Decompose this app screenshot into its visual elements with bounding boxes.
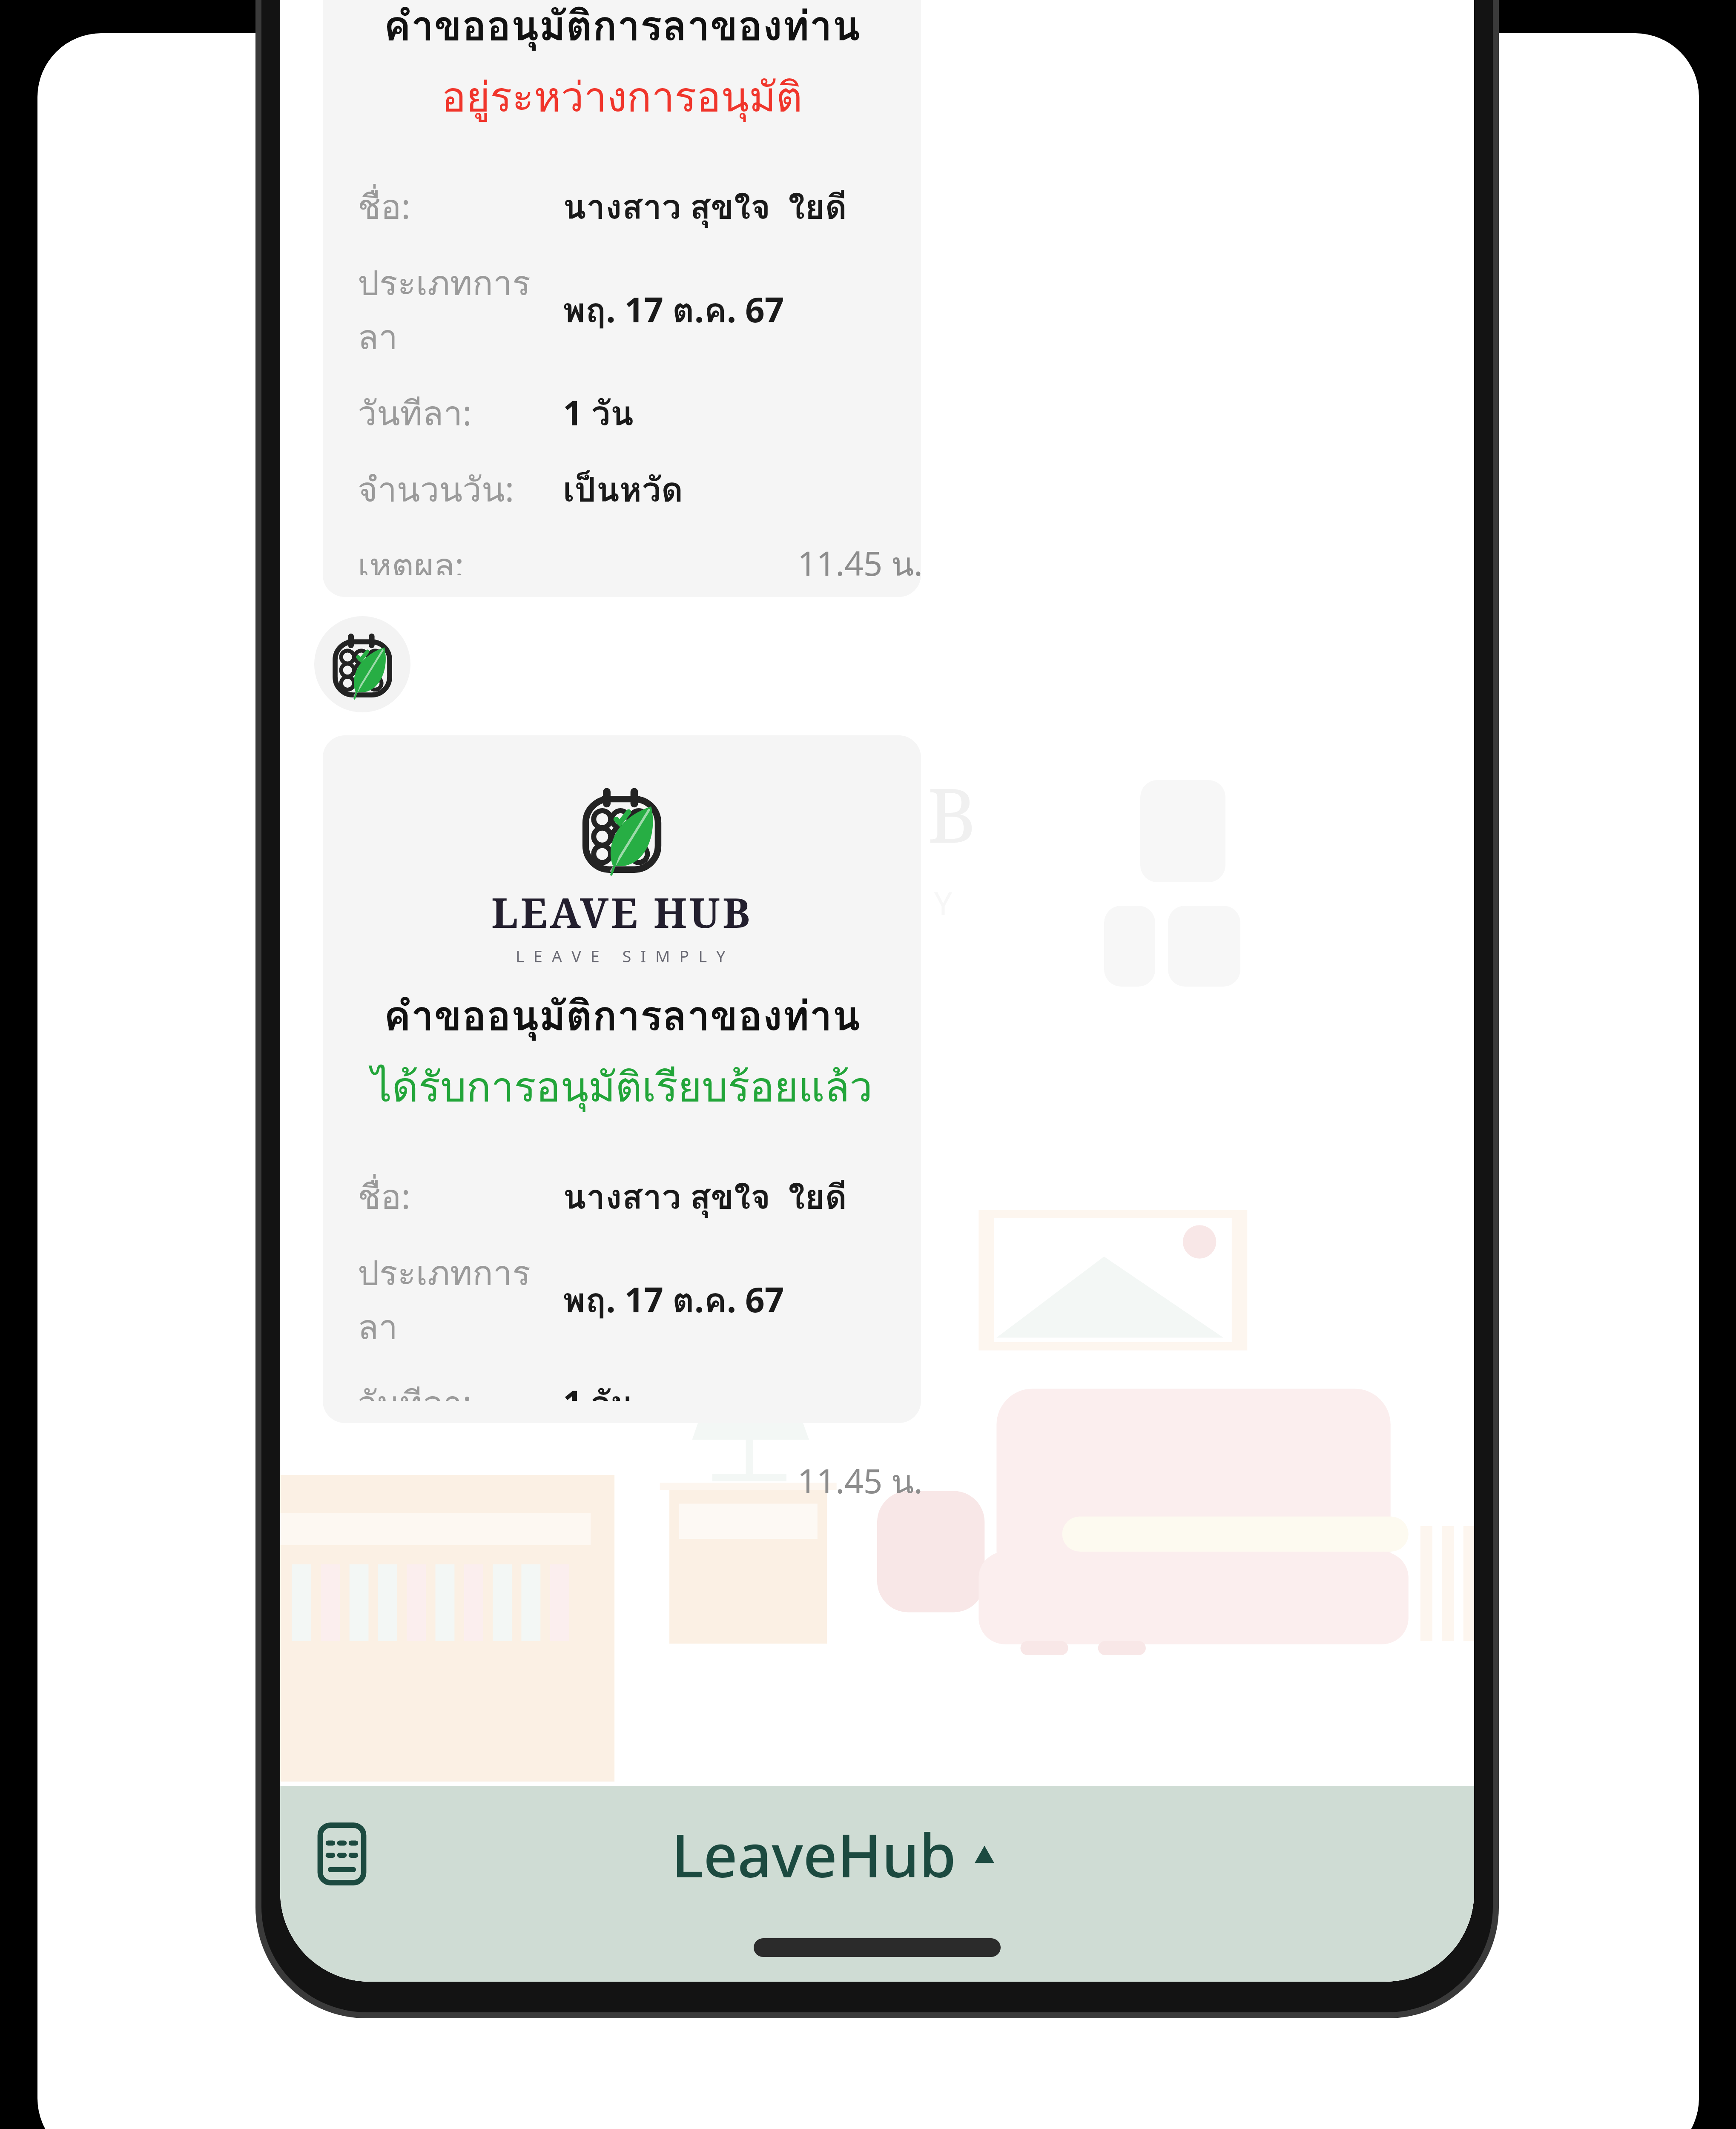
staticText: L E A V E S I M P L Y [485,881,960,924]
staticText: ชื่อ: [358,1170,410,1224]
button[interactable]: LEAVE HUB [323,735,921,1423]
staticText: LEAVE HUB [491,884,753,940]
staticText: คำขออนุมัติการลาของท่าน [384,0,861,58]
staticText: ประเภทการลา [358,1246,563,1354]
staticText: LeaveHub [671,1813,956,1895]
staticText: พฤ. 17 ต.ค. 67 [563,283,784,337]
staticText: 1 วัน [563,1376,634,1401]
staticText: LEAVE HUB [485,763,986,864]
button[interactable]: Keyboard [306,1818,378,1890]
button[interactable]: LEAVE HUB [323,0,921,597]
staticText: นางสาว สุขใจ ใยดี [563,1170,847,1224]
staticText: คำขออนุมัติการลาของท่าน [384,983,861,1048]
staticText: วันทีลา: [358,1376,472,1401]
staticText: วันทีลา: [358,386,472,440]
staticText: เหตุผล: [358,539,464,575]
staticText: ชื่อ: [358,180,410,234]
staticText: L E A V E S I M P L Y [516,945,728,967]
staticText: จำนวนวัน: [358,462,514,516]
staticText: ได้รับการอนุมัติเรียบร้อยแล้ว [371,1054,873,1119]
staticText: 1 วัน [563,386,634,440]
staticText: พฤ. 17 ต.ค. 67 [563,1273,784,1327]
staticText: ประเภทการลา [358,256,563,364]
staticText: เป็นหวัด [563,462,683,516]
staticText: 11.45 น. [798,537,923,590]
button[interactable]: LeaveHub [378,1786,1376,1922]
button[interactable]: LeaveHub bot avatar [314,616,410,712]
staticText: นางสาว สุขใจ ใยดี [563,180,847,234]
staticText: อยู่ระหว่างการอนุมัติ [442,64,803,129]
staticText: 11.45 น. [798,1455,923,1508]
